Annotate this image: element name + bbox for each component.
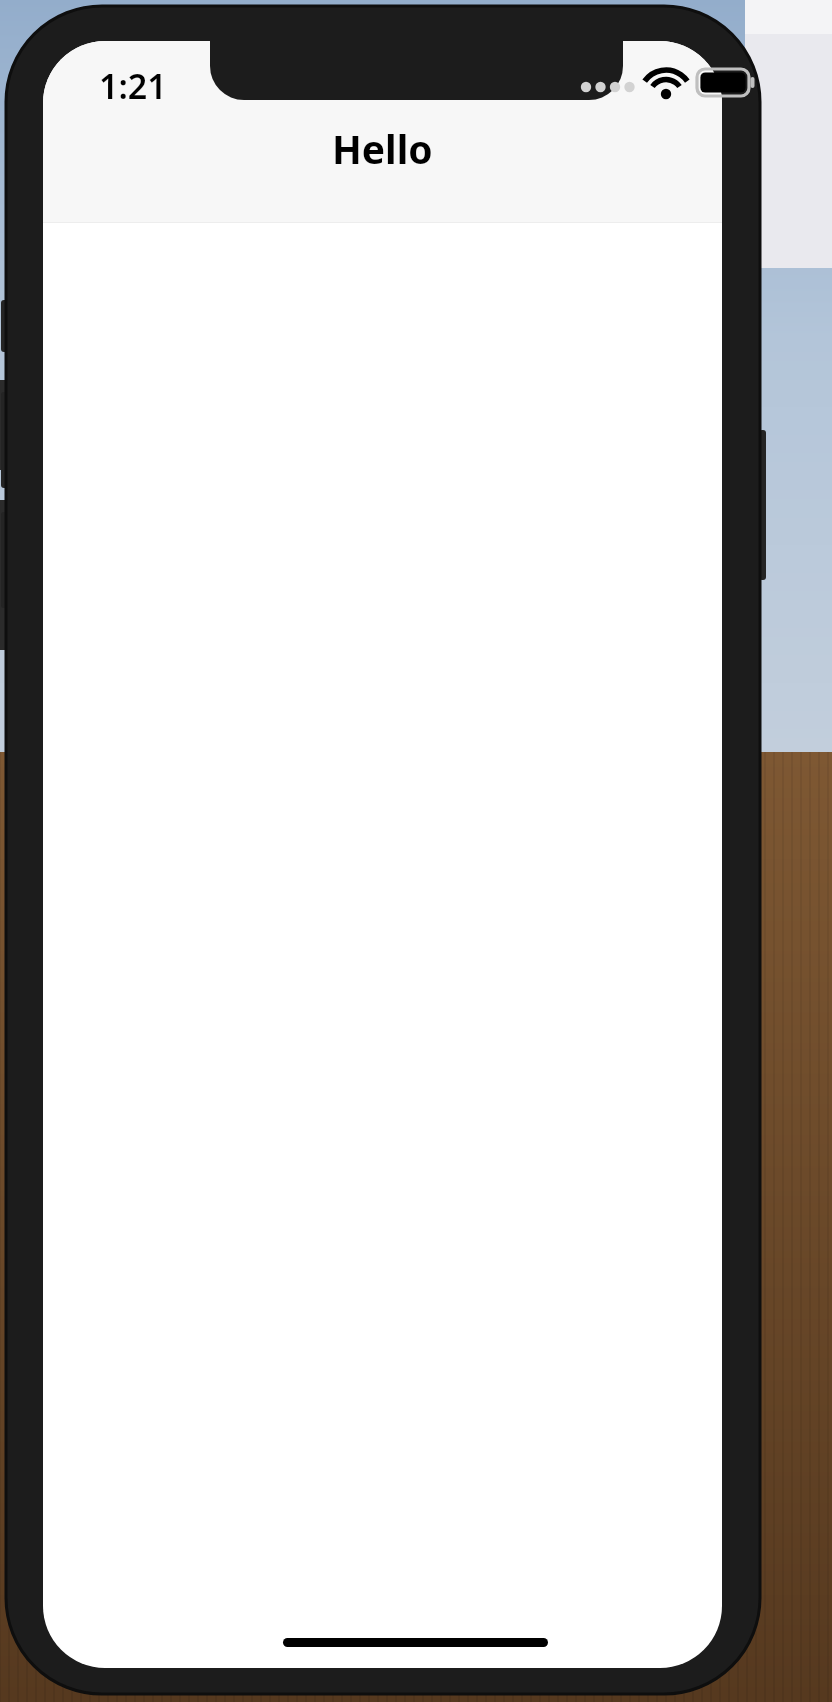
- staticText: 1:21: [99, 63, 167, 109]
- button[interactable]: Hello: [43, 120, 722, 176]
- staticText: Hello: [332, 122, 433, 175]
- other: Time 1:21: [99, 63, 167, 109]
